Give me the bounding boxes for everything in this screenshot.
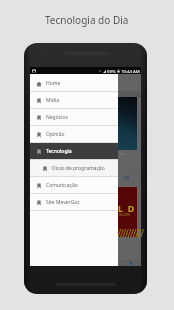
staticText: Mídia bbox=[46, 97, 59, 104]
staticText: 06 2016 bbox=[119, 213, 131, 217]
staticText: Dicas de programação bbox=[52, 165, 105, 172]
button[interactable]: Home bbox=[30, 75, 118, 92]
staticText: Tecnologia do Dia bbox=[45, 13, 129, 27]
staticText: 59% bbox=[107, 68, 116, 74]
button[interactable]: Negócios bbox=[30, 109, 118, 126]
button[interactable]: Site MeverGoz bbox=[30, 194, 118, 211]
staticText: Home bbox=[46, 80, 61, 87]
staticText: Site MeverGoz bbox=[46, 199, 80, 206]
staticText: Opinião bbox=[46, 131, 65, 138]
staticText: 10:44 AM bbox=[121, 68, 140, 74]
button[interactable]: Tecnologia bbox=[30, 143, 118, 160]
staticText: ne bbox=[120, 151, 125, 156]
staticText: Negócios bbox=[46, 114, 68, 121]
staticText: Comunicação bbox=[46, 182, 78, 189]
staticText: Tecnologia bbox=[46, 148, 72, 155]
button[interactable]: Comunicação bbox=[30, 177, 118, 194]
button[interactable]: Mídia bbox=[30, 92, 118, 109]
button[interactable]: Opinião bbox=[30, 126, 118, 143]
staticText: L D bbox=[118, 202, 135, 214]
button[interactable]: Share bbox=[122, 173, 130, 181]
button[interactable]: Dicas de programação bbox=[30, 160, 118, 177]
